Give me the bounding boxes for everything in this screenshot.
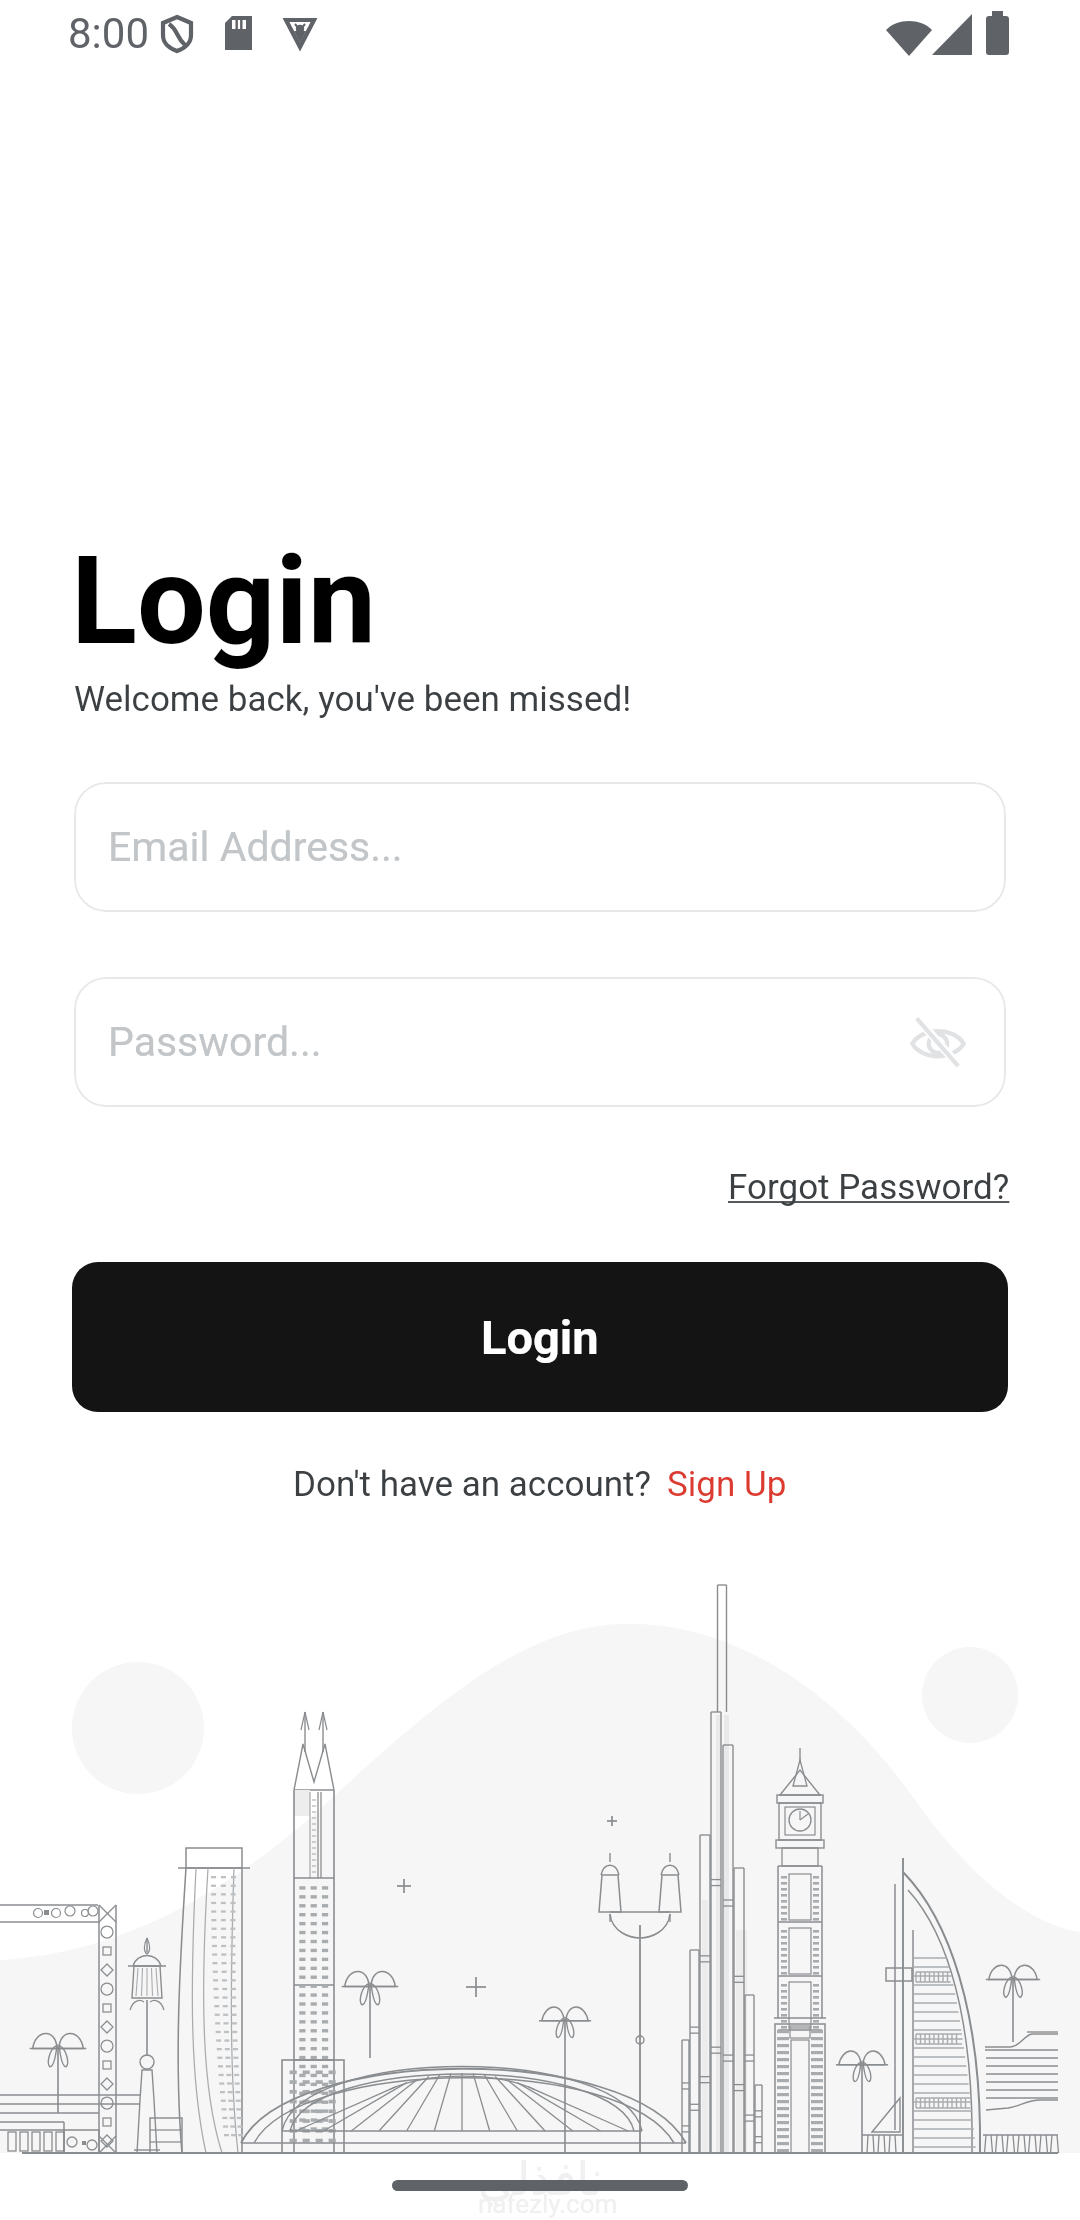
button[interactable]: Forgot Password? [728, 1167, 1010, 1208]
button[interactable]: Show password [906, 1010, 970, 1074]
staticText: 8:00 [68, 9, 149, 58]
staticText: نافذلي [478, 2152, 604, 2206]
staticText: Password... [108, 1018, 322, 1066]
button[interactable]: Login [72, 1262, 1008, 1412]
button[interactable]: Password... [74, 977, 1006, 1107]
staticText: Login [71, 530, 377, 673]
staticText: Sign Up [667, 1464, 787, 1505]
staticText: Don't have an account? [293, 1464, 652, 1505]
staticText: Login [481, 1310, 599, 1365]
button[interactable]: Sign Up [667, 1464, 787, 1505]
staticText: Forgot Password? [728, 1167, 1010, 1208]
staticText: Email Address... [108, 823, 403, 871]
staticText: Welcome back, you've been missed! [74, 679, 632, 720]
staticText: nafezly.com [478, 2189, 618, 2219]
button[interactable]: Email Address... [74, 782, 1006, 912]
